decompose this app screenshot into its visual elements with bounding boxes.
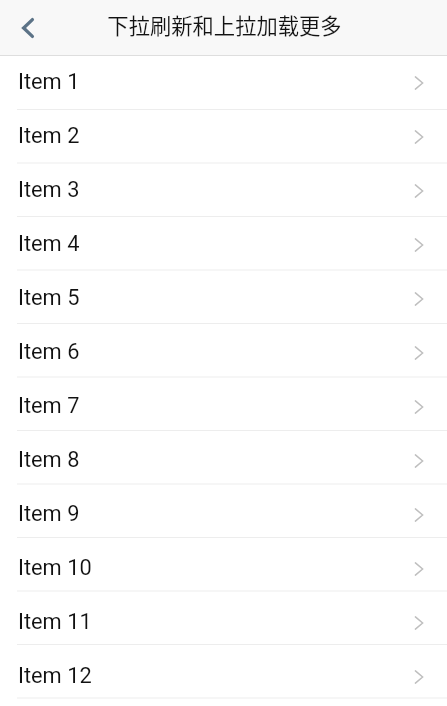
button[interactable]: Item 12 (0, 650, 447, 704)
staticText: Item 3 (18, 177, 80, 203)
button[interactable]: Item 1 (0, 56, 447, 110)
button[interactable]: Item 8 (0, 434, 447, 488)
button[interactable]: Item 2 (0, 110, 447, 164)
button[interactable]: Item 11 (0, 596, 447, 650)
staticText: 下拉刷新和上拉加载更多 (107, 9, 342, 40)
staticText: Item 8 (18, 447, 80, 473)
button[interactable]: Item 4 (0, 218, 447, 272)
staticText: Item 5 (18, 285, 80, 311)
staticText: Item 11 (18, 609, 92, 635)
staticText: Item 10 (18, 555, 92, 581)
button[interactable]: Back (0, 1, 54, 56)
staticText: Item 7 (18, 393, 80, 419)
staticText: Item 9 (18, 501, 80, 527)
button[interactable]: Item 10 (0, 542, 447, 596)
button[interactable]: Item 5 (0, 272, 447, 326)
button[interactable]: Item 9 (0, 488, 447, 542)
button[interactable]: Item 7 (0, 380, 447, 434)
button[interactable]: Item 3 (0, 164, 447, 218)
staticText: Item 2 (18, 123, 80, 149)
staticText: Item 12 (18, 663, 92, 689)
staticText: Item 6 (18, 339, 80, 365)
button[interactable]: Item 6 (0, 326, 447, 380)
staticText: Item 1 (18, 69, 80, 95)
staticText: Item 4 (18, 231, 80, 257)
